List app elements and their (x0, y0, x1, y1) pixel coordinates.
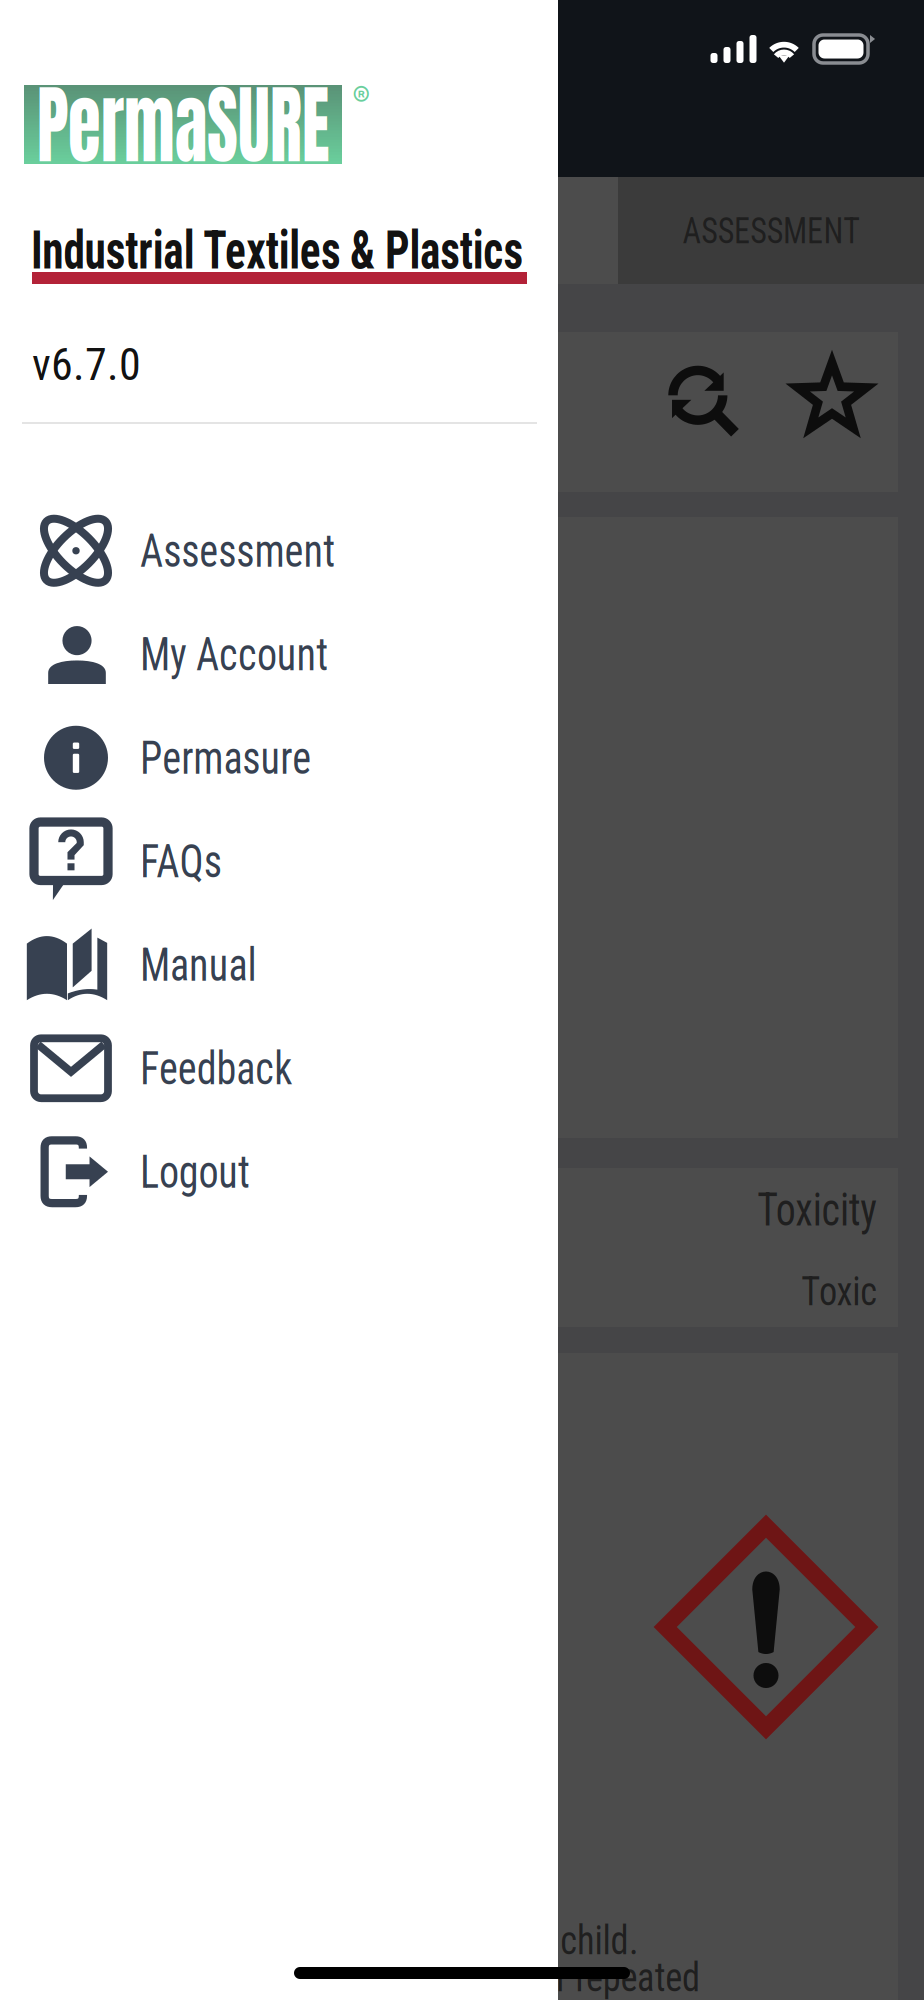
button[interactable]: Refresh search (666, 363, 736, 436)
button[interactable]: FAQs (0, 809, 558, 913)
staticText: Toxicity (741, 1183, 877, 1236)
staticText: unborn child. (452, 1916, 664, 1964)
button[interactable]: ASSESSMENT (618, 177, 924, 284)
staticText: Industrial Textiles & Plastics (31, 219, 637, 281)
button[interactable]: My Account (0, 602, 558, 706)
staticText: ASSESSMENT (668, 209, 874, 252)
button[interactable]: Feedback (0, 1016, 558, 1120)
staticText: ® (352, 81, 369, 113)
staticText: Toxic (791, 1267, 877, 1315)
staticText: damaged or repeated (396, 1953, 742, 2000)
staticText: Manual (140, 937, 276, 992)
button[interactable]: Manual (0, 913, 558, 1016)
staticText: FAQs (140, 834, 235, 889)
staticText: PermaSURE (37, 74, 329, 175)
button[interactable]: Assessment (0, 499, 558, 602)
button[interactable]: Permasure (0, 706, 558, 809)
staticText: Assessment (140, 523, 367, 578)
staticText: My Account (140, 627, 359, 682)
staticText: Feedback (140, 1041, 317, 1096)
button[interactable]: Logout (0, 1120, 558, 1223)
staticText: v6.7.0 (32, 339, 141, 391)
staticText: Permasure (140, 730, 339, 785)
button[interactable]: Favourite (794, 360, 870, 432)
staticText: Logout (140, 1144, 268, 1199)
